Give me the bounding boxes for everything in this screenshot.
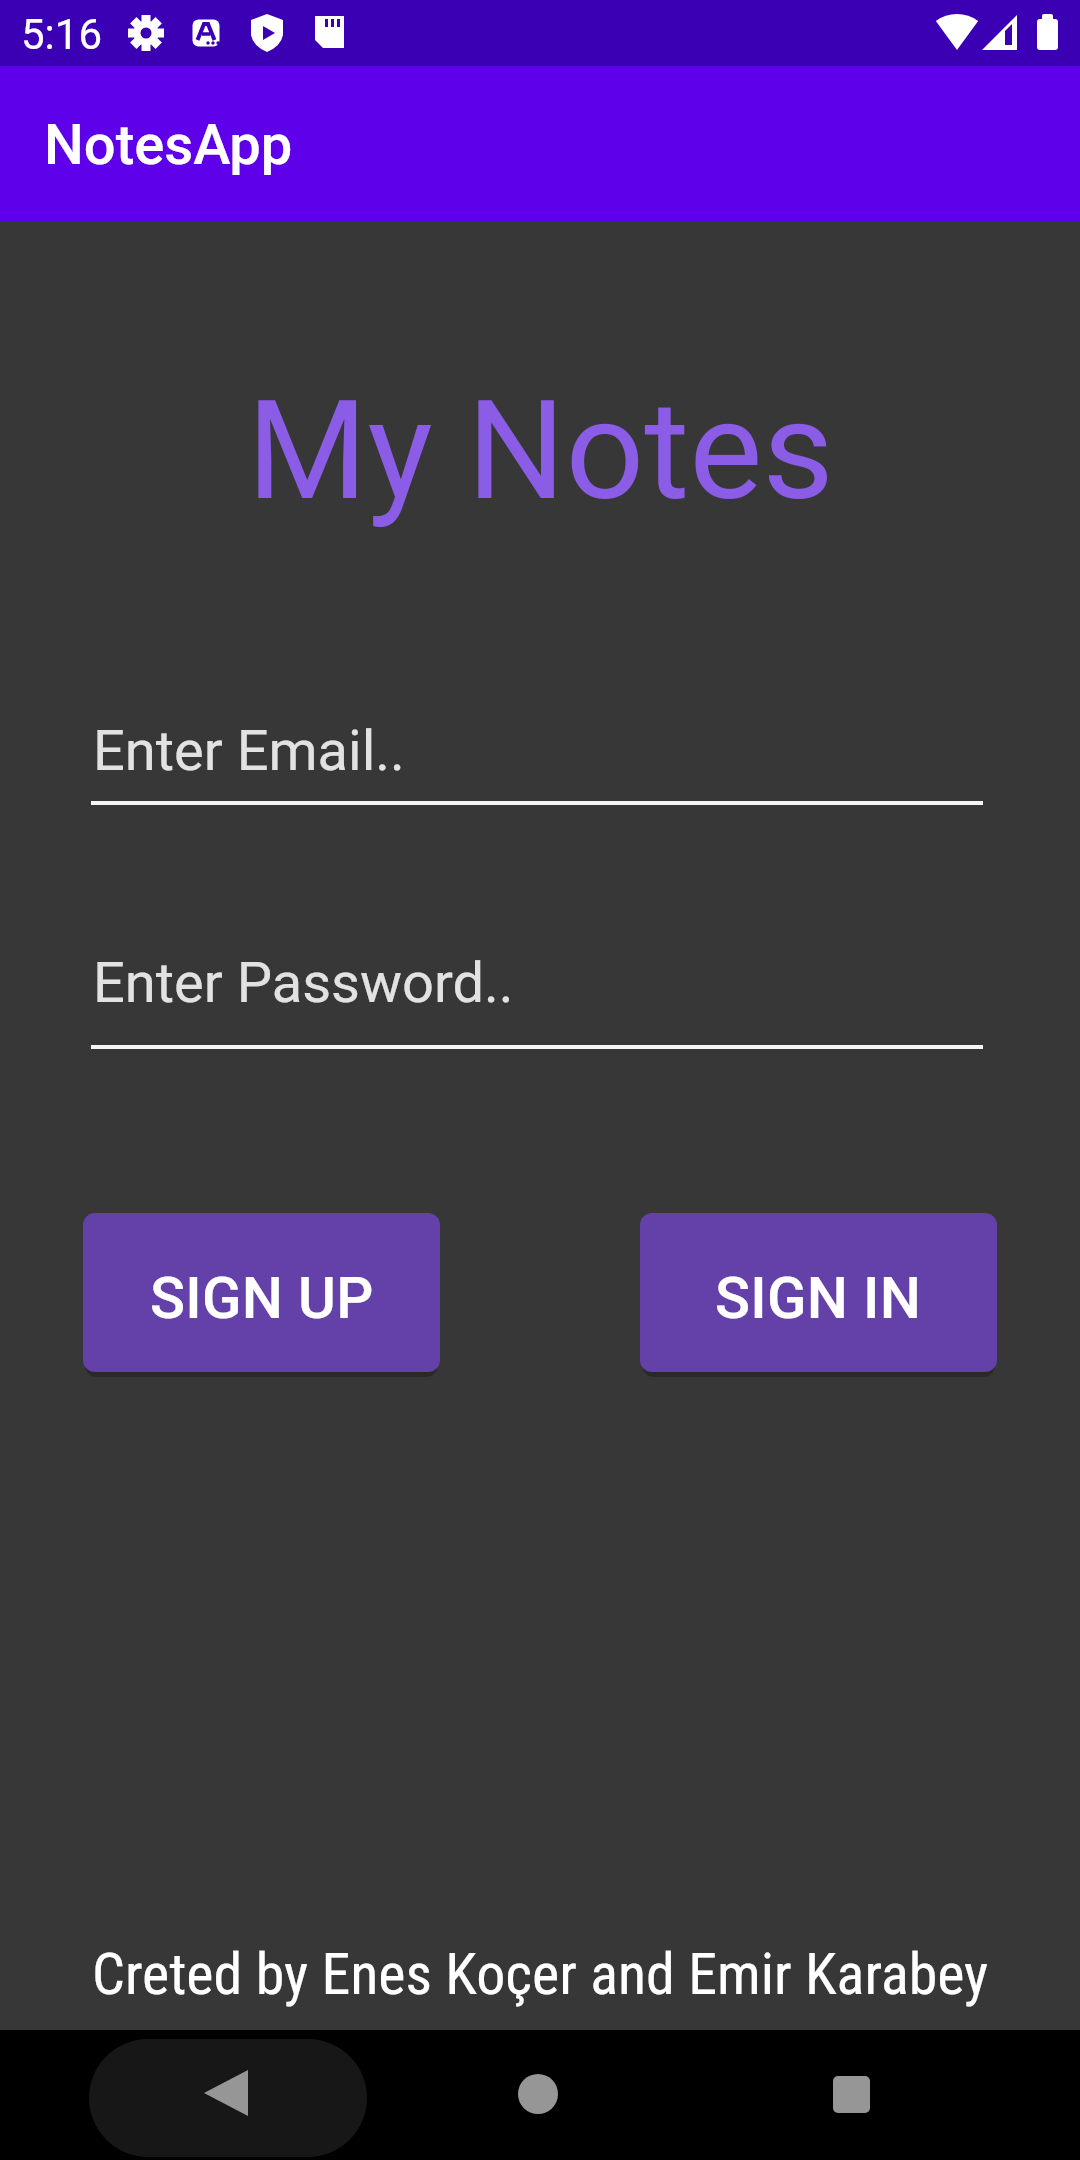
staticText: SIGN IN xyxy=(715,1264,922,1332)
staticText: SIGN UP xyxy=(150,1264,374,1332)
button[interactable]: SIGN IN xyxy=(640,1213,997,1372)
button[interactable] xyxy=(823,2066,879,2122)
button[interactable]: Enter Password.. xyxy=(91,932,983,1050)
staticText: Enter Password.. xyxy=(93,950,514,1016)
staticText: NotesApp xyxy=(44,112,293,178)
button[interactable]: SIGN UP xyxy=(83,1213,440,1372)
staticText: My Notes xyxy=(247,370,834,532)
button[interactable] xyxy=(508,2064,568,2124)
button[interactable]: Enter Email.. xyxy=(91,700,983,806)
staticText: Creted by Enes Koçer and Emir Karabey xyxy=(92,1940,989,2008)
button[interactable] xyxy=(190,2060,265,2126)
staticText: 5:16 xyxy=(21,10,102,59)
staticText: Enter Email.. xyxy=(93,718,405,784)
